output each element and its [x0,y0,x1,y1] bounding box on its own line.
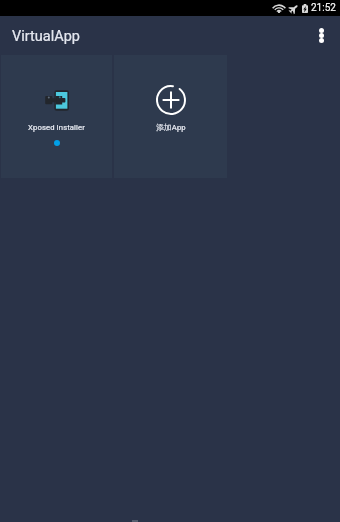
button[interactable]: More options [302,16,340,54]
other: Add app [156,85,186,115]
staticText: Xposed Installer [28,123,85,132]
button[interactable]: Add app [114,55,227,178]
staticText: VirtualApp [12,28,80,45]
button[interactable]: Xposed Installer [1,55,112,178]
staticText: 21:52 [311,2,336,14]
staticText: 添加App [156,123,186,133]
